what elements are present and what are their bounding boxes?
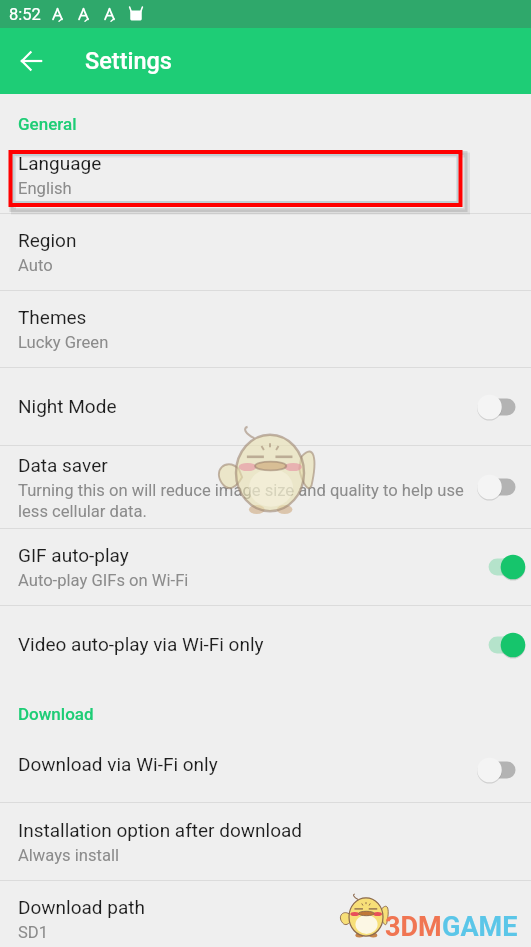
staticText: Turning this on will reduce image size a… xyxy=(18,481,468,521)
staticText: Download via Wi-Fi only xyxy=(18,753,458,775)
staticText: Settings xyxy=(85,47,172,75)
button[interactable]: Back xyxy=(10,38,56,84)
button[interactable]: GIF auto-play xyxy=(0,529,531,605)
staticText: English xyxy=(18,179,468,198)
button[interactable]: Language xyxy=(0,150,531,213)
staticText: GIF auto-play xyxy=(18,544,458,566)
staticText: Download xyxy=(18,704,94,724)
staticText: GAME xyxy=(442,911,518,943)
button[interactable]: Night Mode xyxy=(0,368,531,445)
staticText: Always install xyxy=(18,846,468,865)
button[interactable]: Turn off xyxy=(472,625,531,665)
button[interactable]: Installation option after download xyxy=(0,803,531,880)
button[interactable]: Turn on xyxy=(472,467,531,507)
staticText: Region xyxy=(18,229,458,251)
staticText: General xyxy=(18,114,77,134)
staticText: Language xyxy=(18,152,458,174)
button[interactable]: Region xyxy=(0,214,531,290)
staticText: Themes xyxy=(18,306,458,328)
staticText: Auto xyxy=(18,256,468,275)
staticText: Auto-play GIFs on Wi-Fi xyxy=(18,571,468,590)
button[interactable]: Download via Wi-Fi only xyxy=(0,738,531,802)
staticText: 3DM xyxy=(385,911,442,943)
staticText: Download path xyxy=(18,896,458,918)
button[interactable]: Turn on xyxy=(472,750,531,790)
staticText: Video auto-play via Wi-Fi only xyxy=(18,633,458,655)
button[interactable]: Download path xyxy=(0,881,531,947)
staticText: Night Mode xyxy=(18,395,458,417)
button[interactable]: Themes xyxy=(0,291,531,367)
button[interactable]: Turn off xyxy=(472,547,531,587)
button[interactable]: Video auto-play via Wi-Fi only xyxy=(0,606,531,683)
staticText: SD1 xyxy=(18,923,468,942)
staticText: Installation option after download xyxy=(18,819,458,841)
staticText: Data saver xyxy=(18,454,458,476)
staticText: 8:52 xyxy=(9,5,41,24)
staticText: Lucky Green xyxy=(18,333,468,352)
button[interactable]: Data saver xyxy=(0,446,531,528)
button[interactable]: Turn on xyxy=(472,387,531,427)
